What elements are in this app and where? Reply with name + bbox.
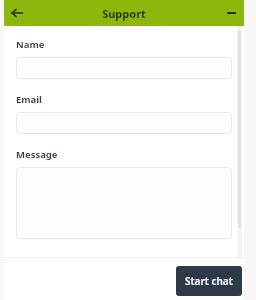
button[interactable]: Start chat xyxy=(176,266,242,296)
staticText: Start chat xyxy=(185,274,233,288)
button[interactable] xyxy=(16,167,232,239)
staticText: Support xyxy=(102,6,146,21)
button[interactable]: Minimize xyxy=(218,0,244,26)
staticText: Email xyxy=(16,93,42,106)
staticText: Name xyxy=(16,38,45,51)
button[interactable] xyxy=(16,112,232,134)
button[interactable] xyxy=(16,57,232,79)
button[interactable]: Back xyxy=(4,0,30,26)
staticText: Message xyxy=(16,148,58,161)
